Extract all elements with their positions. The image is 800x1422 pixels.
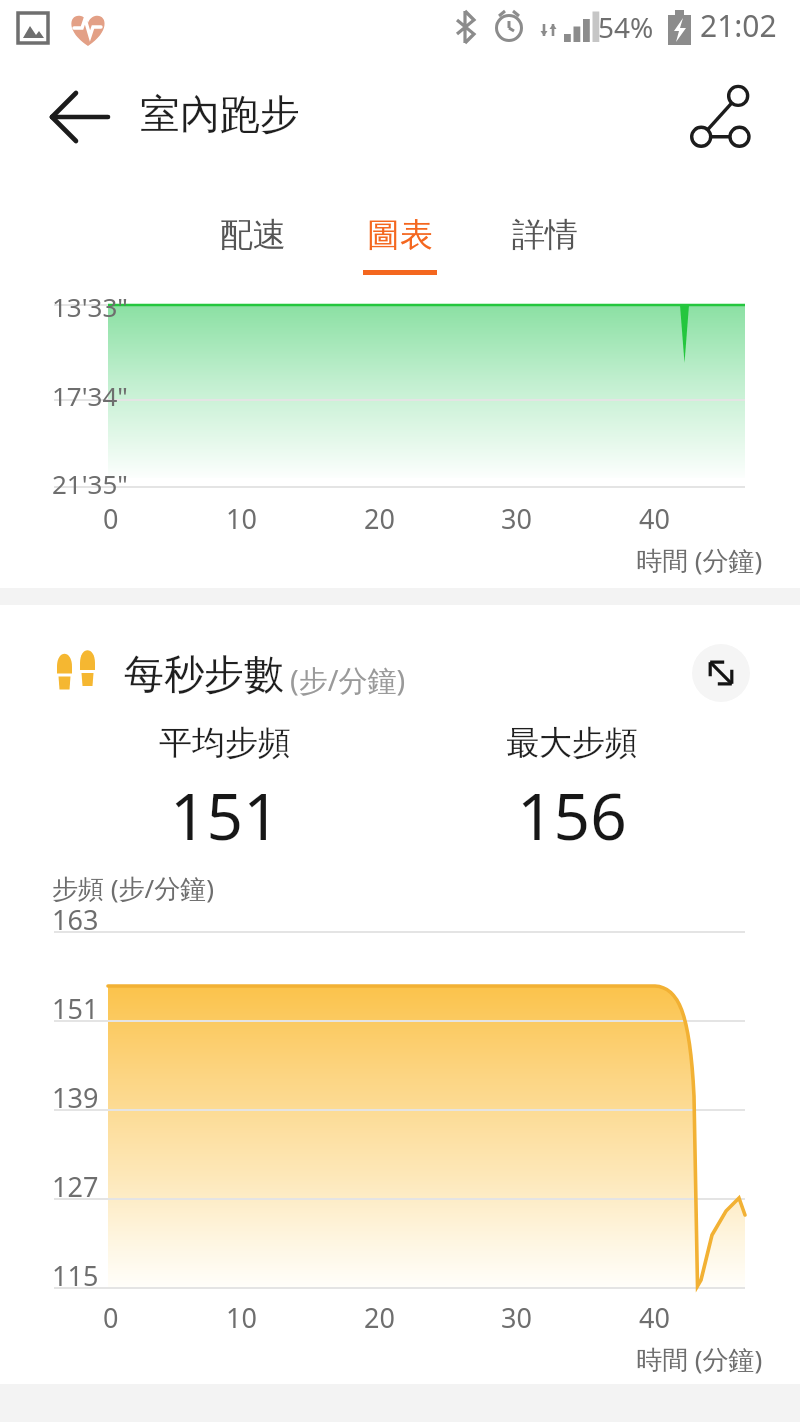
staticText: 163 xyxy=(52,901,99,938)
button[interactable]: Share xyxy=(688,84,754,150)
staticText: 0 xyxy=(103,500,119,537)
staticText: 詳情 xyxy=(512,214,578,256)
staticText: 17'34" xyxy=(52,378,128,413)
staticText: 30 xyxy=(501,1299,532,1336)
staticText: 151 xyxy=(170,772,280,842)
button[interactable]: Back xyxy=(46,84,112,150)
button[interactable]: Expand chart xyxy=(692,644,750,702)
staticText: 151 xyxy=(52,990,99,1027)
staticText: 156 xyxy=(517,772,627,842)
staticText: 139 xyxy=(52,1079,99,1116)
staticText: 時間 (分鐘) xyxy=(636,1341,763,1377)
staticText: 21'35" xyxy=(52,466,128,501)
staticText: 室內跑步 xyxy=(140,89,300,139)
staticText: 0 xyxy=(103,1299,119,1336)
staticText: 115 xyxy=(52,1257,99,1294)
staticText: 時間 (分鐘) xyxy=(636,542,763,578)
staticText: 10 xyxy=(226,1299,257,1336)
staticText: 20 xyxy=(364,500,395,537)
staticText: 30 xyxy=(501,500,532,537)
staticText: 平均步頻 xyxy=(159,722,291,764)
staticText: 54% xyxy=(598,8,654,46)
staticText: (步/分鐘) xyxy=(290,660,406,700)
staticText: 13'33" xyxy=(52,289,128,324)
button[interactable]: 配速 xyxy=(193,206,313,283)
staticText: 步頻 (步/分鐘) xyxy=(52,870,215,906)
staticText: 127 xyxy=(52,1168,99,1205)
button[interactable]: 詳情 xyxy=(485,206,605,283)
staticText: 21:02 xyxy=(700,5,777,46)
staticText: 40 xyxy=(639,1299,670,1336)
staticText: 40 xyxy=(639,500,670,537)
staticText: 最大步頻 xyxy=(506,722,638,764)
staticText: 圖表 xyxy=(367,214,433,256)
button[interactable]: 圖表 xyxy=(340,206,460,283)
staticText: 10 xyxy=(226,500,257,537)
staticText: 配速 xyxy=(220,214,286,256)
staticText: 20 xyxy=(364,1299,395,1336)
staticText: 每秒步數 xyxy=(124,649,284,699)
